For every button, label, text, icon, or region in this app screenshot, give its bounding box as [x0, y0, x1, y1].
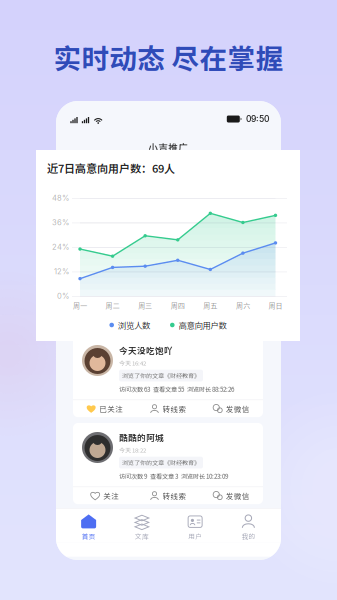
staticText: 周三 — [138, 300, 152, 310]
button[interactable]: 发微信 — [200, 486, 263, 506]
staticText: 今天 16:42 — [119, 358, 146, 367]
staticText: 浏览了你的文章《财经教育》 — [122, 458, 200, 467]
staticText: 48% — [52, 193, 69, 203]
staticText: 36% — [52, 218, 69, 227]
staticText: 今天没吃饱吖 — [119, 344, 173, 356]
button[interactable]: 用户 — [168, 513, 222, 543]
staticText: 周日 — [268, 300, 282, 310]
button[interactable]: 我的 — [222, 513, 275, 543]
staticText: 发微信 — [226, 403, 250, 414]
staticText: 周四 — [171, 300, 185, 310]
staticText: 转线索 — [162, 490, 186, 501]
staticText: 用户 — [188, 531, 202, 541]
staticText: 首页 — [82, 531, 96, 541]
staticText: 转线索 — [162, 403, 186, 414]
staticText: 0% — [57, 291, 69, 301]
button[interactable]: 已关注 — [73, 399, 136, 419]
staticText: 12% — [54, 267, 69, 276]
staticText: 已关注 — [99, 403, 123, 414]
staticText: 09:50 — [246, 114, 269, 124]
staticText: 高意向用户数 — [179, 319, 227, 331]
button[interactable]: 关注 — [73, 486, 136, 506]
staticText: 浏览了你的文章《财经教育》 — [122, 371, 200, 380]
staticText: 今天 18:22 — [119, 445, 146, 454]
button[interactable]: 首页 — [62, 513, 115, 543]
staticText: 酷酷的阿城 — [119, 431, 164, 443]
staticText: 实时动态 尽在掌握 — [53, 37, 283, 77]
button[interactable]: 文库 — [115, 513, 168, 543]
staticText: 周一 — [73, 300, 87, 310]
staticText: 浏览人数 — [118, 319, 150, 331]
staticText: 24% — [52, 242, 69, 252]
staticText: 近7日高意向用户数：69人 — [47, 160, 175, 176]
staticText: 发微信 — [226, 490, 250, 501]
staticText: 我的 — [241, 531, 255, 541]
staticText: 周五 — [203, 300, 217, 310]
button[interactable]: 发微信 — [200, 399, 263, 419]
staticText: 文库 — [135, 531, 149, 541]
staticText: 访问次数 63 查看文章 55 浏览时长 88:52:26 — [119, 384, 234, 393]
button[interactable]: 转线索 — [136, 486, 200, 506]
staticText: 周六 — [236, 300, 250, 310]
staticText: 周二 — [106, 300, 120, 310]
staticText: 小吉推广 — [148, 140, 188, 154]
staticText: 关注 — [103, 490, 119, 501]
button[interactable]: 转线索 — [136, 399, 200, 419]
staticText: 访问次数 9 查看文章 3 浏览时长 10:23:09 — [119, 471, 228, 480]
